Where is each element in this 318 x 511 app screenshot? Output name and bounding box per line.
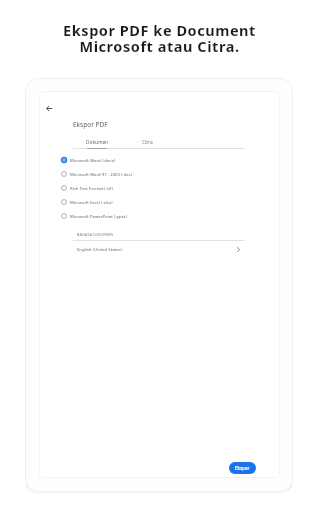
- button[interactable]: Microsoft Word 97 - 2003 (.doc): [61, 167, 246, 181]
- button[interactable]: Rich Text Format (.rtf): [61, 181, 246, 195]
- staticText: English (United States): [77, 246, 122, 252]
- button[interactable]: Ekspor: [229, 462, 256, 474]
- button[interactable]: Back: [41, 100, 57, 116]
- staticText: BAHASA DOKUMEN: [77, 232, 114, 237]
- staticText: Microsoft Word (.docx): [70, 157, 115, 163]
- staticText: Microsoft PowerPoint (.pptx): [70, 213, 127, 219]
- button[interactable]: Microsoft PowerPoint (.pptx): [61, 209, 246, 223]
- staticText: Microsoft Excel (.xlsx): [70, 199, 113, 205]
- staticText: Citra: [142, 139, 153, 146]
- button[interactable]: English (United States): [73, 242, 245, 256]
- button[interactable]: Microsoft Word (.docx): [61, 153, 246, 167]
- button[interactable]: Dokumen: [73, 139, 121, 152]
- staticText: Dokumen: [86, 139, 109, 146]
- staticText: Ekspor PDF: [73, 120, 108, 129]
- staticText: Ekspor: [235, 465, 250, 471]
- staticText: Ekspor PDF ke Document Microsoft atau Ci…: [63, 20, 256, 56]
- button[interactable]: Microsoft Excel (.xlsx): [61, 195, 246, 209]
- staticText: Microsoft Word 97 - 2003 (.doc): [70, 171, 132, 177]
- button[interactable]: Citra: [123, 139, 172, 152]
- staticText: Rich Text Format (.rtf): [70, 185, 113, 191]
